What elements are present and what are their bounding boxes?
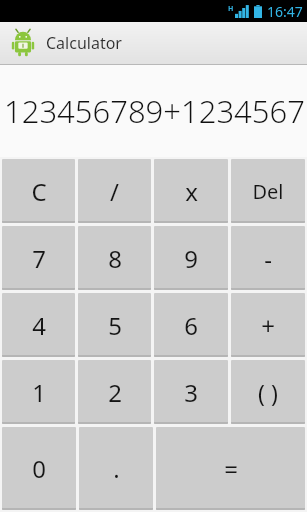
staticText: 2 [108,376,122,409]
staticText: 0 [32,452,46,485]
button[interactable]: 5 [78,293,151,357]
button[interactable]: 1 [2,360,75,424]
button[interactable]: 9 [154,226,228,290]
staticText: 16:47 [267,2,303,21]
staticText: 3 [184,376,198,409]
button[interactable]: ( ) [231,360,305,424]
staticText: 4 [32,309,46,342]
staticText: ( ) [258,377,278,408]
staticText: Calculator [46,32,122,54]
staticText: - [264,242,272,275]
staticText: + [261,309,275,342]
staticText: Del [252,178,284,205]
staticText: 8 [108,242,122,275]
staticText: x [185,175,198,208]
button[interactable]: 6 [154,293,228,357]
button[interactable]: + [231,293,305,357]
button[interactable]: . [79,427,153,510]
staticText: 5 [108,309,122,342]
staticText: 1 [32,376,46,409]
staticText: H [228,4,234,14]
staticText: 123456789+123456789 [4,90,305,132]
button[interactable]: 8 [78,226,151,290]
button[interactable]: / [78,159,151,223]
staticText: 6 [184,309,198,342]
button[interactable]: 7 [2,226,75,290]
staticText: C [31,175,47,208]
staticText: 9 [184,242,198,275]
button[interactable]: Del [231,159,305,223]
button[interactable]: x [154,159,228,223]
button[interactable]: 0 [2,427,76,510]
button[interactable]: 3 [154,360,228,424]
button[interactable]: 2 [78,360,151,424]
staticText: 7 [32,242,46,275]
staticText: . [113,452,120,485]
staticText: = [224,452,238,485]
button[interactable]: = [156,427,305,510]
staticText: / [110,175,119,208]
button[interactable]: 4 [2,293,75,357]
button[interactable]: C [2,159,75,223]
button[interactable]: - [231,226,305,290]
